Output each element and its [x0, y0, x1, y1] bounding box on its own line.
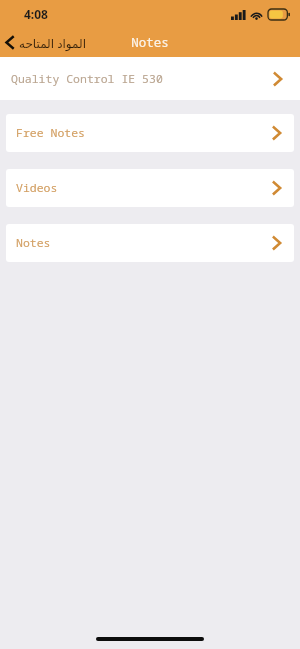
staticText: 4:08 [24, 6, 48, 22]
button[interactable]: Back [0, 34, 92, 51]
staticText: Notes [16, 235, 51, 251]
other: Open [270, 123, 283, 143]
other: Open [271, 69, 284, 89]
staticText: Notes [131, 34, 169, 51]
button[interactable]: Notes [6, 224, 294, 262]
staticText: Quality Control IE 530 [11, 71, 163, 87]
staticText: Free Notes [16, 125, 85, 141]
staticText: المواد المتاحه [19, 35, 86, 51]
other: Open [270, 178, 283, 198]
button[interactable]: Quality Control IE 530 [0, 57, 300, 100]
other: Open [270, 233, 283, 253]
button[interactable]: Free Notes [6, 114, 294, 152]
staticText: Videos [16, 180, 58, 196]
other: Back [4, 34, 15, 51]
button[interactable]: Videos [6, 169, 294, 207]
